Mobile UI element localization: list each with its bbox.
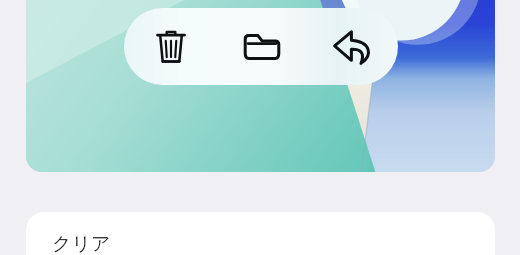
button[interactable]: Delete [125,8,216,85]
button[interactable]: Reply [307,8,398,85]
button[interactable]: Move to folder [216,8,307,85]
staticText: クリア [52,232,111,255]
button[interactable]: クリア [26,212,495,255]
